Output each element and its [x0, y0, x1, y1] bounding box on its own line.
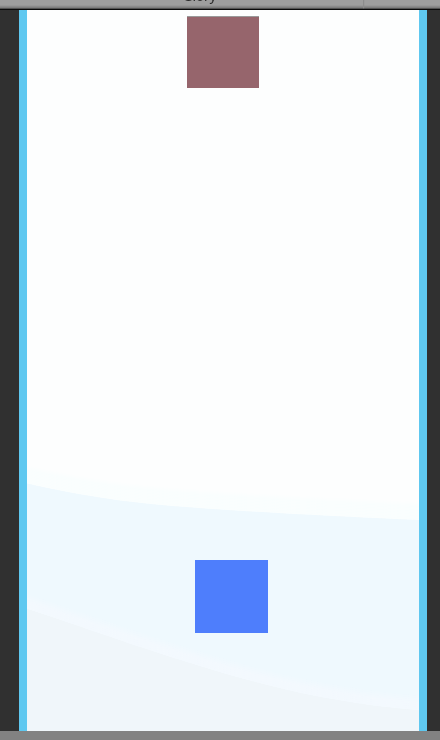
button[interactable]: Open photo [187, 16, 259, 88]
